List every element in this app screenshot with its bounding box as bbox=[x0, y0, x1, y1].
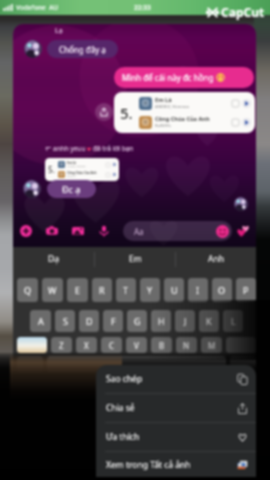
button[interactable]: T bbox=[116, 278, 136, 302]
button[interactable]: Mình để cái này đc hồng bbox=[114, 67, 254, 88]
button[interactable]: R bbox=[92, 278, 112, 302]
button[interactable]: A bbox=[30, 310, 51, 332]
button[interactable]: Z bbox=[51, 337, 72, 353]
staticText: S bbox=[63, 315, 68, 327]
button[interactable]: C bbox=[101, 337, 122, 353]
staticText: Chống đây ạ bbox=[59, 44, 106, 55]
staticText: T bbox=[123, 284, 129, 296]
button[interactable]: W bbox=[42, 278, 63, 302]
staticText: anhh yeuu bbox=[53, 144, 86, 153]
staticText: CapCut bbox=[221, 4, 265, 20]
staticText: Sao chép bbox=[106, 373, 143, 385]
button[interactable]: 5. bbox=[114, 92, 255, 133]
staticText: 5. bbox=[120, 103, 133, 123]
button[interactable]: Dạ bbox=[13, 247, 94, 271]
button[interactable]: Emoji bbox=[216, 225, 229, 238]
button[interactable]: Backspace bbox=[226, 337, 256, 353]
button[interactable] bbox=[23, 180, 41, 198]
button[interactable]: Anh bbox=[176, 247, 256, 271]
staticText: L bbox=[231, 315, 236, 327]
staticText: P bbox=[243, 284, 249, 296]
button[interactable]: Q bbox=[17, 278, 38, 302]
staticText: D bbox=[86, 315, 93, 327]
button[interactable]: Ưa thích bbox=[96, 423, 256, 451]
button[interactable]: D bbox=[79, 310, 99, 332]
staticText: R bbox=[99, 284, 105, 296]
button[interactable]: Chia sẻ bbox=[96, 394, 256, 422]
button[interactable]: K bbox=[199, 310, 219, 332]
button[interactable]: V bbox=[126, 337, 147, 353]
button[interactable]: H bbox=[151, 310, 171, 332]
button[interactable]: Gallery bbox=[70, 223, 86, 239]
staticText: F bbox=[111, 315, 116, 327]
button[interactable]: I bbox=[188, 278, 208, 302]
button[interactable]: N bbox=[176, 337, 197, 353]
staticText: E bbox=[75, 284, 81, 296]
staticText: Em bbox=[129, 253, 142, 265]
button[interactable]: Y bbox=[140, 278, 160, 302]
staticText: Z bbox=[59, 340, 64, 351]
button[interactable]: P bbox=[236, 278, 256, 302]
button[interactable]: Xem trong Tất cả ảnh bbox=[96, 452, 256, 477]
button[interactable]: Add bbox=[18, 223, 34, 239]
staticText: G bbox=[134, 315, 141, 327]
button[interactable]: S bbox=[55, 310, 75, 332]
button[interactable]: Chống đây ạ bbox=[47, 40, 118, 58]
button[interactable]: F bbox=[103, 310, 123, 332]
staticText: RuNHYs bbox=[155, 123, 171, 129]
button[interactable]: Send like bbox=[235, 223, 251, 239]
button[interactable]: Aa bbox=[123, 221, 232, 241]
button[interactable]: 5. bbox=[45, 158, 119, 181]
button[interactable] bbox=[234, 197, 248, 211]
button[interactable]: O bbox=[212, 278, 232, 302]
staticText: Công Chúa Của Anh bbox=[155, 115, 210, 123]
staticText: ANDIEZ, Hiennoo bbox=[155, 104, 190, 110]
staticText: W bbox=[48, 284, 57, 296]
button[interactable]: Voice bbox=[96, 223, 112, 239]
staticText: N bbox=[183, 340, 190, 351]
staticText: U bbox=[171, 284, 178, 296]
button[interactable]: Share bbox=[95, 103, 113, 121]
staticText: B bbox=[159, 340, 165, 351]
staticText: V bbox=[134, 340, 139, 351]
button[interactable]: Space bbox=[47, 356, 226, 372]
button[interactable]: Symbols bbox=[17, 356, 43, 372]
staticText: X bbox=[84, 340, 89, 351]
button[interactable] bbox=[24, 40, 42, 58]
staticText: I bbox=[196, 284, 200, 296]
staticText: RuNHYs bbox=[67, 175, 76, 178]
button[interactable]: Shift bbox=[17, 337, 47, 353]
staticText: Dạ bbox=[48, 253, 59, 265]
staticText: Chia sẻ bbox=[106, 402, 135, 414]
staticText: H bbox=[158, 315, 165, 327]
staticText: O bbox=[218, 284, 226, 296]
staticText: 22:33 bbox=[134, 3, 151, 12]
button[interactable]: M bbox=[201, 337, 222, 353]
staticText: Lạ bbox=[55, 26, 63, 36]
staticText: Anh bbox=[208, 253, 224, 265]
button[interactable]: U bbox=[164, 278, 184, 302]
button[interactable]: Camera bbox=[44, 223, 60, 239]
button[interactable]: Enter bbox=[230, 356, 256, 372]
button[interactable]: Sao chép bbox=[96, 365, 256, 393]
button[interactable]: Đc ạ bbox=[47, 180, 96, 198]
button[interactable]: X bbox=[76, 337, 97, 353]
staticText: Mình để cái này đc hồng bbox=[122, 72, 214, 83]
button[interactable]: L bbox=[223, 310, 243, 332]
button[interactable]: E bbox=[67, 278, 88, 302]
button[interactable]: Em bbox=[95, 247, 175, 271]
staticText: J bbox=[184, 315, 187, 327]
button[interactable]: J bbox=[175, 310, 195, 332]
staticText: Ưa thích bbox=[106, 431, 140, 443]
staticText: Aa bbox=[134, 226, 144, 237]
staticText: Y bbox=[147, 284, 153, 296]
staticText: A bbox=[38, 315, 44, 327]
staticText: Em Là bbox=[155, 96, 172, 104]
staticText: đã trả lời bạn bbox=[93, 144, 134, 153]
button[interactable]: G bbox=[127, 310, 147, 332]
staticText: C bbox=[109, 340, 115, 351]
staticText: K bbox=[206, 315, 212, 327]
button[interactable]: B bbox=[151, 337, 172, 353]
staticText: Đc ạ bbox=[62, 183, 81, 195]
staticText: Xem trong Tất cả ảnh bbox=[106, 459, 191, 471]
